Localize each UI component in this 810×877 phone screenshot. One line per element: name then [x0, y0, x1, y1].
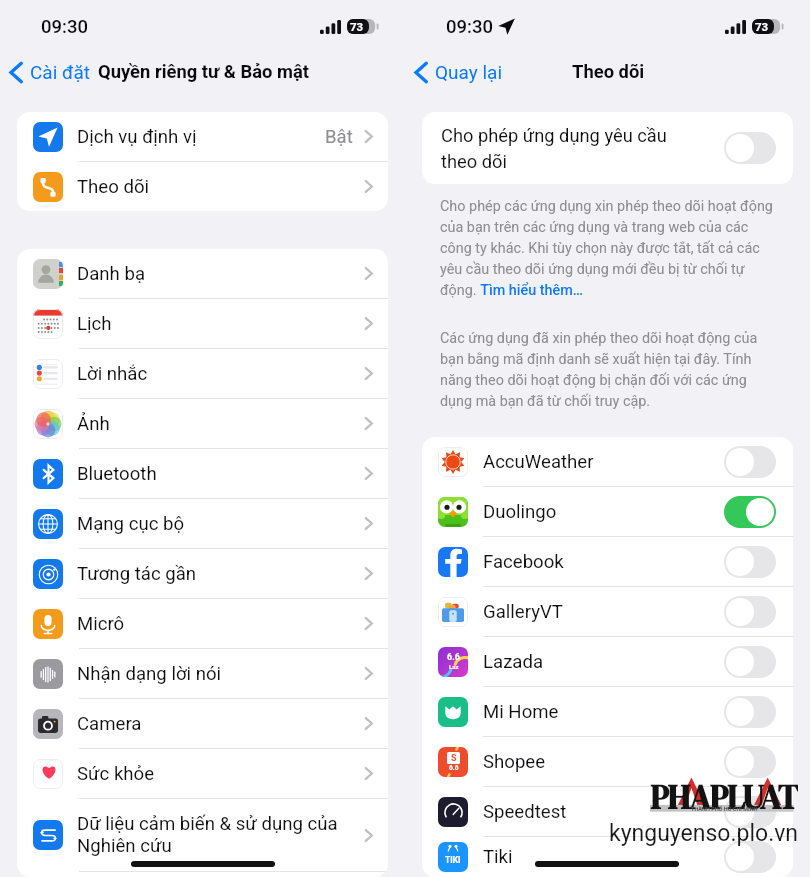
button[interactable]: Mạng cục bộ [17, 499, 388, 548]
staticText: Lịch [77, 313, 364, 335]
button[interactable]: Toggle off [724, 596, 776, 628]
staticText: kynguyenso.plo.vn [609, 820, 799, 847]
button[interactable]: GalleryVT [422, 587, 793, 636]
button[interactable]: 6.6 [422, 637, 793, 686]
button[interactable]: Camera [17, 699, 388, 748]
button[interactable]: Facebook [422, 537, 793, 586]
staticText: Dữ liệu cảm biến & sử dụng của [77, 813, 338, 835]
button[interactable]: Micrô [17, 599, 388, 648]
staticText: Cài đặt [30, 61, 90, 83]
button[interactable]: Toggle off [724, 646, 776, 678]
staticText: Theo dõi [77, 176, 364, 198]
button[interactable]: Tương tác gần [17, 549, 388, 598]
staticText: Quyền riêng tư & Bảo mật [98, 61, 309, 83]
staticText: Lazada [483, 651, 724, 673]
button[interactable]: Cho phép ứng dụng yêu cầu theo dõi [422, 112, 793, 184]
staticText: Lời nhắc [77, 363, 364, 385]
staticText: Bluetooth [77, 463, 364, 485]
staticText: Sức khỏe [77, 763, 364, 785]
staticText: 09:30 [446, 16, 493, 38]
staticText: 6.6 [449, 764, 459, 772]
staticText: Nhận dạng lời nói [77, 663, 364, 685]
button[interactable]: Ảnh [17, 399, 388, 448]
staticText: 09:30 [41, 16, 88, 38]
staticText: Danh bạ [77, 263, 364, 285]
staticText: Tương tác gần [77, 563, 364, 585]
button[interactable]: Bluetooth [17, 449, 388, 498]
staticText: Dịch vụ định vị [77, 126, 325, 148]
staticText: Laz [449, 663, 459, 670]
button[interactable]: Toggle off [724, 696, 776, 728]
staticText: Theo dõi [572, 61, 645, 83]
staticText: Quay lại [435, 61, 503, 83]
button[interactable]: Toggle off [724, 546, 776, 578]
button[interactable]: Toggle off [724, 132, 776, 164]
button[interactable]: S [422, 737, 793, 786]
staticText: 73 [350, 20, 364, 33]
button[interactable]: Toggle on [724, 496, 776, 528]
staticText: Shopee [483, 751, 724, 773]
staticText: Cho phép các ứng dụng xin phép theo dõi … [440, 198, 774, 299]
button[interactable]: Lời nhắc [17, 349, 388, 398]
staticText: GalleryVT [483, 601, 724, 623]
staticText: Facebook [483, 551, 724, 573]
button[interactable]: AccuWeather [422, 437, 793, 486]
staticText: S [451, 753, 457, 764]
staticText: Micrô [77, 613, 364, 635]
button[interactable]: Danh bạ [17, 249, 388, 298]
button[interactable]: Theo dõi [17, 162, 388, 211]
staticText: THÀNH PHỐ HỒ CHÍ MINH [691, 806, 758, 812]
staticText: Mạng cục bộ [77, 513, 364, 535]
staticText: PHAPLUAT [650, 775, 798, 817]
button[interactable]: TIKI [422, 837, 793, 877]
button[interactable]: Dịch vụ định vị [17, 112, 388, 161]
button[interactable]: Toggle off [724, 796, 776, 828]
staticText: Cho phép ứng dụng yêu cầu theo dõi [441, 125, 667, 172]
button[interactable]: Lịch [17, 299, 388, 348]
staticText: TIKI [445, 855, 461, 865]
button[interactable]: Duolingo [422, 487, 793, 536]
button[interactable]: Speedtest [422, 787, 793, 836]
staticText: 73 [755, 20, 769, 33]
button[interactable]: Back to Quay lại [414, 52, 503, 92]
staticText: Ảnh [77, 413, 364, 435]
staticText: AccuWeather [483, 451, 724, 473]
button[interactable]: Nhận dạng lời nói [17, 649, 388, 698]
button[interactable]: Dữ liệu cảm biến & sử dụng của [17, 799, 388, 871]
staticText: Camera [77, 713, 364, 735]
staticText: Bật [325, 126, 353, 148]
staticText: Mi Home [483, 701, 724, 723]
button[interactable]: Toggle off [724, 746, 776, 778]
staticText: Duolingo [483, 501, 724, 523]
staticText: Tiki [483, 846, 724, 868]
staticText: Nghiên cứu [77, 835, 172, 857]
staticText: Các ứng dụng đã xin phép theo dõi hoạt đ… [440, 330, 774, 410]
staticText: Speedtest [483, 801, 724, 823]
button[interactable]: Back to Cài đặt [9, 52, 90, 92]
button[interactable]: Mi Home [422, 687, 793, 736]
button[interactable]: Toggle off [724, 841, 776, 873]
button[interactable]: Sức khỏe [17, 749, 388, 798]
button[interactable]: Toggle off [724, 446, 776, 478]
staticText: 6.6 [447, 652, 460, 663]
